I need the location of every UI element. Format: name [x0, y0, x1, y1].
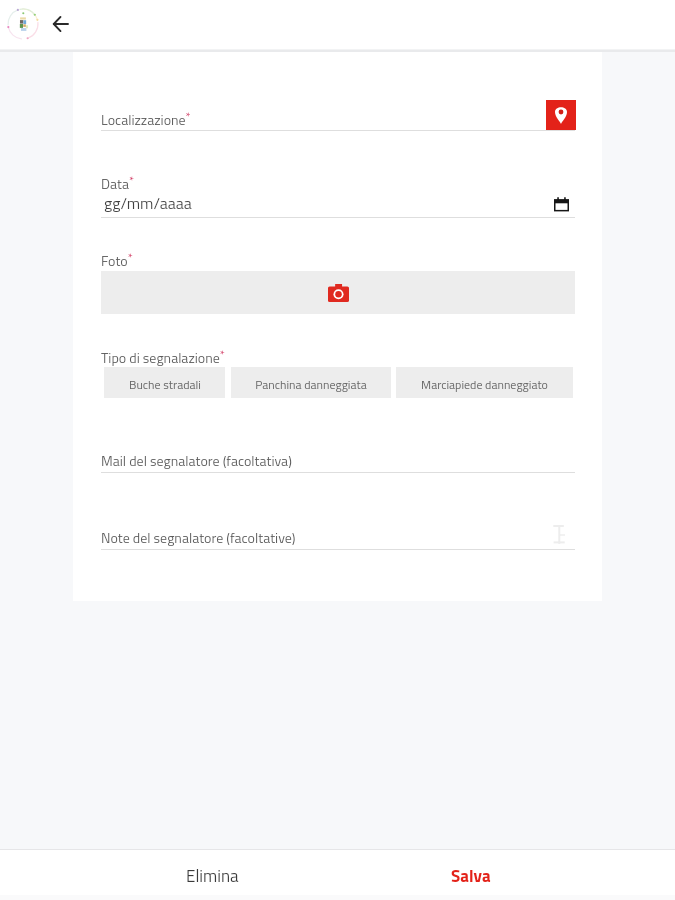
staticText: Salva	[451, 863, 491, 889]
button[interactable]: Indietro	[45, 8, 76, 39]
staticText: Buche stradali	[129, 375, 201, 393]
button[interactable]: Panchina danneggiata	[231, 367, 391, 398]
staticText: Note del segnalatore (facoltative)	[101, 527, 296, 548]
staticText: Marciapiede danneggiato	[421, 375, 548, 393]
button[interactable]: Apri il calendario	[552, 195, 570, 213]
button[interactable]: Marciapiede danneggiato	[396, 367, 573, 398]
button[interactable]: Elimina	[86, 853, 339, 898]
button[interactable]: Scatta una foto	[101, 271, 575, 314]
button[interactable]: Logo del comune	[7, 8, 39, 40]
button[interactable]: Buche stradali	[104, 367, 225, 398]
staticText: Foto*	[101, 248, 133, 272]
staticText: Elimina	[186, 863, 239, 889]
staticText: Tipo di segnalazione*	[101, 345, 225, 369]
staticText: Mail del segnalatore (facoltativa)	[101, 450, 292, 471]
staticText: Localizzazione*	[101, 107, 191, 131]
staticText: gg/mm/aaaa	[104, 191, 192, 215]
staticText: Data*	[101, 171, 135, 195]
staticText: Panchina danneggiata	[255, 375, 367, 393]
button[interactable]: Salva	[344, 853, 597, 898]
button[interactable]: Usa la posizione attuale	[546, 100, 576, 130]
